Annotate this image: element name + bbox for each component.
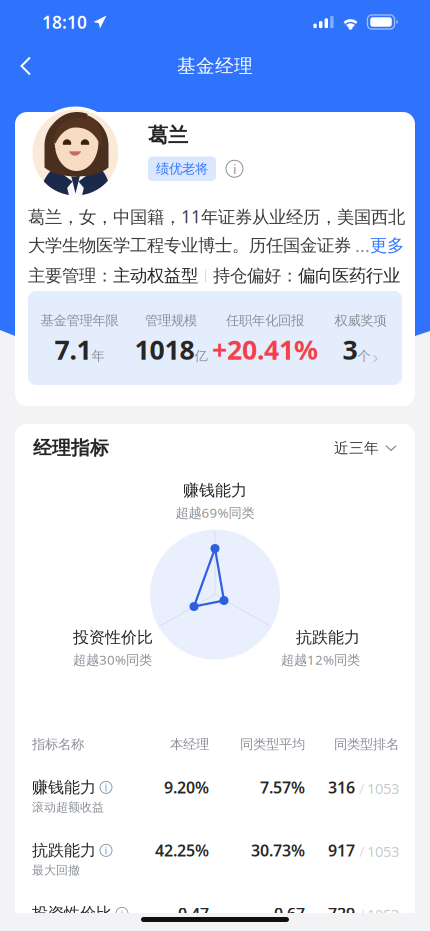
staticText: 3 [342, 332, 357, 367]
button[interactable]: 更多 [370, 235, 404, 256]
staticText: 同类型平均 [240, 736, 305, 752]
staticText: 指标名称 [32, 736, 84, 752]
staticText: 基金管理年限 [40, 312, 118, 329]
staticText: 主动权益型 [113, 265, 198, 286]
staticText: 0.47 [178, 903, 209, 924]
staticText: 葛兰，女，中国籍，11年证券从业经历，美国西北 [28, 205, 405, 228]
staticText: 经理指标 [33, 436, 109, 459]
staticText: 本经理 [170, 736, 209, 752]
button[interactable]: 近三年 [334, 439, 397, 457]
staticText: 管理规模 [145, 312, 197, 329]
staticText: 超越12%同类 [281, 651, 360, 668]
staticText: 1018 [134, 332, 194, 367]
staticText: 滚动超额收益 [32, 800, 104, 815]
staticText: 葛兰 [148, 123, 188, 148]
staticText: 7.57% [260, 777, 305, 798]
staticText: 赚钱能力 [183, 481, 247, 500]
button[interactable]: 基金管理年限 [15, 112, 415, 385]
staticText: 偏向医药行业 [298, 265, 400, 286]
staticText: 赚钱能力 [32, 778, 96, 797]
staticText: 抗跌能力 [296, 628, 360, 647]
staticText: 42.25% [155, 840, 209, 861]
staticText: 投资性价比 [32, 904, 112, 923]
button[interactable]: 说明 [226, 160, 243, 177]
staticText: 投资性价比 [73, 628, 153, 647]
staticText: 917 [328, 840, 355, 861]
staticText: i [233, 160, 236, 178]
staticText: 基金经理 [177, 54, 253, 77]
staticText: 抗跌能力 [32, 841, 96, 860]
staticText: / [359, 841, 364, 861]
staticText: 亿 [194, 348, 207, 364]
staticText: ... [355, 234, 370, 257]
button[interactable]: 返回 [6, 45, 46, 86]
staticText: 1053 [367, 841, 399, 861]
staticText: i [104, 780, 107, 794]
staticText: / [359, 778, 364, 798]
staticText: 大学生物医学工程专业博士。历任国金证券 [28, 235, 351, 256]
staticText: 729 [328, 903, 355, 924]
staticText: 18:10 [42, 10, 87, 33]
staticText: +20.41% [212, 332, 318, 367]
staticText: 30.73% [251, 840, 305, 861]
staticText: / [359, 904, 364, 924]
staticText: 0.67 [274, 903, 305, 924]
staticText: 持仓偏好： [213, 265, 298, 286]
staticText: 更多 [370, 235, 404, 256]
staticText: 1053 [367, 778, 399, 798]
staticText: 9.20% [164, 777, 209, 798]
staticText: 权威奖项 [334, 312, 386, 329]
staticText: 任职年化回报 [226, 312, 304, 329]
staticText: 个 [357, 348, 370, 364]
staticText: i [120, 906, 123, 920]
staticText: 绩优老将 [156, 161, 208, 177]
staticText: i [104, 843, 107, 857]
staticText: 316 [328, 777, 355, 798]
staticText: 超越69%同类 [175, 504, 254, 521]
staticText: 1053 [367, 904, 399, 924]
staticText: 7.1 [54, 332, 91, 367]
staticText: 超越30%同类 [73, 651, 152, 668]
staticText: 年 [91, 348, 104, 364]
staticText: 最大回撤 [32, 863, 80, 878]
staticText: 主要管理： [28, 265, 113, 286]
staticText: 近三年 [334, 439, 379, 457]
staticText: 同类型排名 [334, 736, 399, 752]
